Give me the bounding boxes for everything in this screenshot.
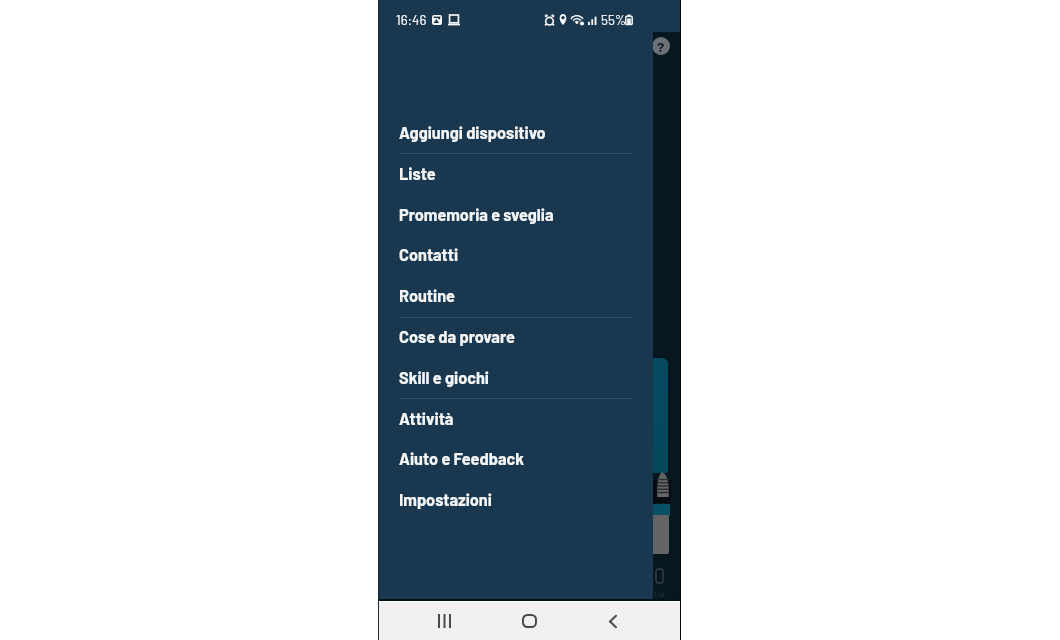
staticText: Liste: [399, 164, 436, 184]
staticText: 16:46: [396, 12, 427, 28]
staticText: Impostazioni: [399, 490, 492, 510]
button[interactable]: Promemoria e sveglia: [378, 194, 653, 235]
staticText: Aiuto e Feedback: [399, 449, 525, 469]
button[interactable]: Routine: [378, 275, 653, 316]
button[interactable]: Contatti: [378, 234, 653, 275]
staticText: Cose da provare: [399, 327, 515, 347]
button[interactable]: Recent apps: [430, 602, 458, 640]
other: Help: [652, 37, 670, 55]
button[interactable]: Liste: [378, 153, 653, 194]
staticText: tivi: [654, 589, 665, 599]
button[interactable]: Cose da provare: [378, 316, 653, 357]
button[interactable]: Skill e giochi: [378, 357, 653, 398]
staticText: ?: [657, 38, 665, 55]
button[interactable]: Home: [515, 602, 543, 640]
staticText: Promemoria e sveglia: [399, 205, 554, 225]
staticText: Aggiungi dispositivo: [399, 123, 546, 143]
staticText: Skill e giochi: [399, 368, 490, 388]
button[interactable]: Impostazioni: [378, 479, 653, 520]
button[interactable]: Aggiungi dispositivo: [378, 112, 653, 153]
button[interactable]: Attività: [378, 398, 653, 439]
button[interactable]: Back: [599, 602, 627, 640]
staticText: Attività: [399, 409, 454, 429]
button[interactable]: Aiuto e Feedback: [378, 438, 653, 479]
staticText: Contatti: [399, 245, 459, 265]
staticText: 55%: [601, 12, 627, 28]
staticText: Routine: [399, 286, 455, 306]
